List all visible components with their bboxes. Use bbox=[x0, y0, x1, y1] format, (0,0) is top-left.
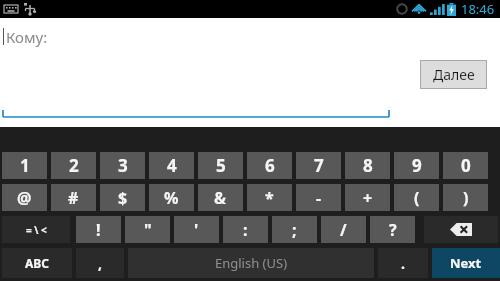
staticText: $ bbox=[118, 187, 128, 209]
staticText: # bbox=[68, 187, 79, 209]
button[interactable]: $ bbox=[100, 184, 145, 211]
button[interactable]: 0 bbox=[443, 152, 488, 179]
button[interactable]: 8 bbox=[345, 152, 390, 179]
staticText: + bbox=[363, 187, 373, 209]
staticText: 9 bbox=[412, 154, 422, 177]
button[interactable]: English (US) bbox=[128, 248, 374, 278]
staticText: % bbox=[164, 187, 179, 209]
staticText: 6 bbox=[265, 154, 275, 177]
button[interactable]: 7 bbox=[296, 152, 341, 179]
staticText: , bbox=[98, 254, 102, 273]
button[interactable]: * bbox=[247, 184, 292, 211]
staticText: : bbox=[243, 219, 248, 241]
staticText: 7 bbox=[314, 154, 324, 177]
staticText: 0 bbox=[461, 154, 471, 177]
button[interactable]: ' bbox=[174, 216, 219, 243]
staticText: 1 bbox=[20, 154, 30, 177]
button[interactable]: ABC bbox=[2, 248, 72, 278]
staticText: ! bbox=[96, 219, 101, 241]
button[interactable]: @ bbox=[2, 184, 47, 211]
staticText: ? bbox=[389, 219, 397, 241]
button[interactable]: ! bbox=[76, 216, 121, 243]
button[interactable]: # bbox=[51, 184, 96, 211]
button[interactable]: 5 bbox=[198, 152, 243, 179]
button[interactable]: ( bbox=[394, 184, 439, 211]
staticText: / bbox=[340, 219, 347, 241]
button[interactable]: 9 bbox=[394, 152, 439, 179]
staticText: @ bbox=[17, 187, 32, 209]
staticText: = \ < bbox=[26, 223, 47, 237]
button[interactable]: Next bbox=[432, 248, 500, 278]
button[interactable]: 3 bbox=[100, 152, 145, 179]
staticText: Кому: bbox=[6, 27, 48, 47]
staticText: ; bbox=[292, 219, 297, 241]
staticText: 8 bbox=[363, 154, 373, 177]
staticText: & bbox=[214, 187, 227, 209]
staticText: ' bbox=[194, 219, 199, 241]
button[interactable]: = \ < bbox=[2, 216, 70, 243]
staticText: ) bbox=[463, 187, 469, 209]
staticText: Next bbox=[450, 254, 482, 272]
staticText: 5 bbox=[216, 154, 226, 177]
staticText: Далее bbox=[433, 65, 475, 84]
staticText: * bbox=[265, 187, 274, 209]
button[interactable]: / bbox=[321, 216, 366, 243]
button[interactable]: % bbox=[149, 184, 194, 211]
staticText: 4 bbox=[167, 154, 177, 177]
button[interactable]: 4 bbox=[149, 152, 194, 179]
button[interactable]: Далее bbox=[421, 61, 486, 88]
button[interactable]: & bbox=[198, 184, 243, 211]
staticText: " bbox=[144, 219, 152, 241]
button[interactable]: - bbox=[296, 184, 341, 211]
button[interactable]: " bbox=[125, 216, 170, 243]
staticText: ABC bbox=[25, 255, 49, 271]
button[interactable]: 6 bbox=[247, 152, 292, 179]
button[interactable]: + bbox=[345, 184, 390, 211]
button[interactable]: Backspace bbox=[424, 216, 498, 243]
button[interactable]: : bbox=[223, 216, 268, 243]
staticText: 18:46 bbox=[461, 0, 495, 18]
button[interactable]: ) bbox=[443, 184, 488, 211]
staticText: . bbox=[401, 254, 405, 273]
staticText: ( bbox=[414, 187, 420, 209]
staticText: - bbox=[316, 187, 322, 209]
button[interactable]: 1 bbox=[2, 152, 47, 179]
staticText: English (US) bbox=[215, 254, 288, 272]
staticText: 2 bbox=[69, 154, 79, 177]
button[interactable]: , bbox=[76, 248, 124, 278]
button[interactable]: 2 bbox=[51, 152, 96, 179]
button[interactable]: . bbox=[378, 248, 428, 278]
staticText: 3 bbox=[118, 154, 128, 177]
button[interactable]: ; bbox=[272, 216, 317, 243]
button[interactable]: ? bbox=[370, 216, 415, 243]
